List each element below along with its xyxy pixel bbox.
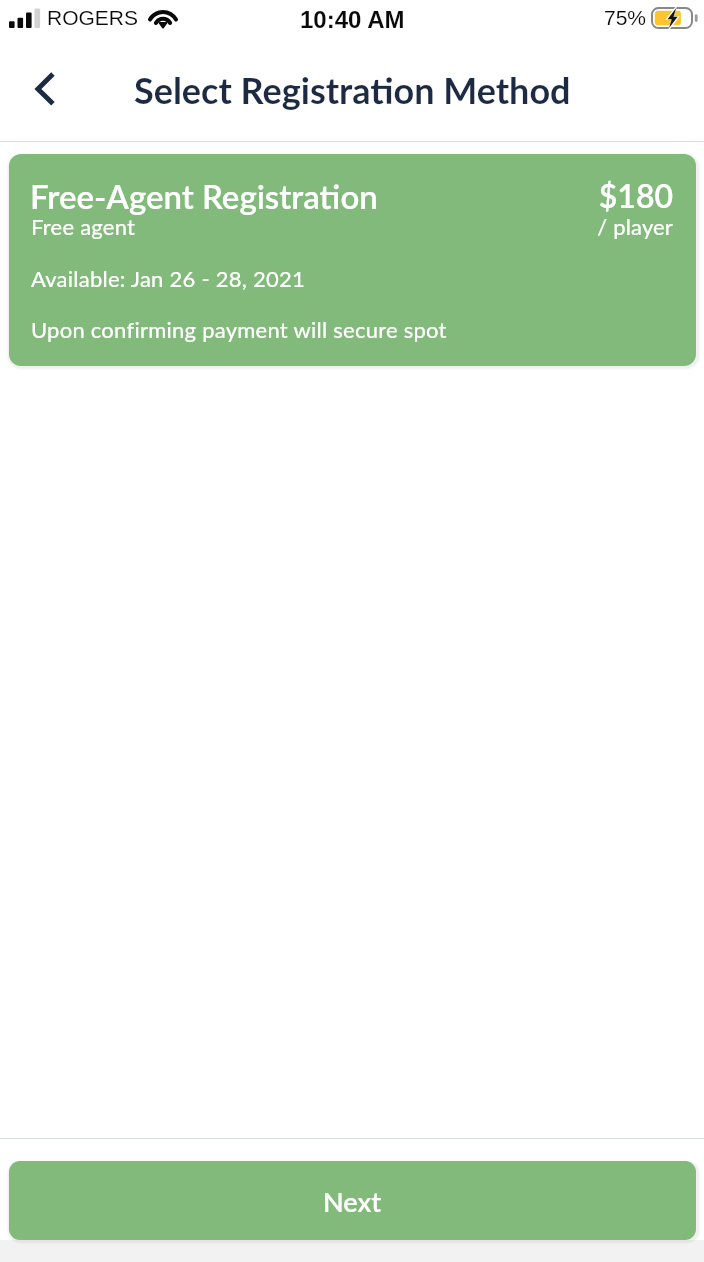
staticText: Free agent [31,213,136,239]
staticText: Free-Agent Registration [30,176,378,216]
staticText: 10:40 AM [300,6,405,33]
staticText: $180 [598,176,673,214]
button[interactable]: Back [6,58,76,128]
staticText: Next [323,1185,382,1217]
staticText: Select Registration Method [134,68,571,111]
button[interactable]: Free-Agent Registration [9,154,696,366]
staticText: / player [597,213,673,239]
staticText: Upon confirming payment will secure spot [31,316,447,342]
staticText: Available: Jan 26 - 28, 2021 [31,265,305,291]
staticText: 75% [604,6,647,29]
button[interactable]: Next [9,1161,696,1240]
staticText: ROGERS [47,6,139,29]
